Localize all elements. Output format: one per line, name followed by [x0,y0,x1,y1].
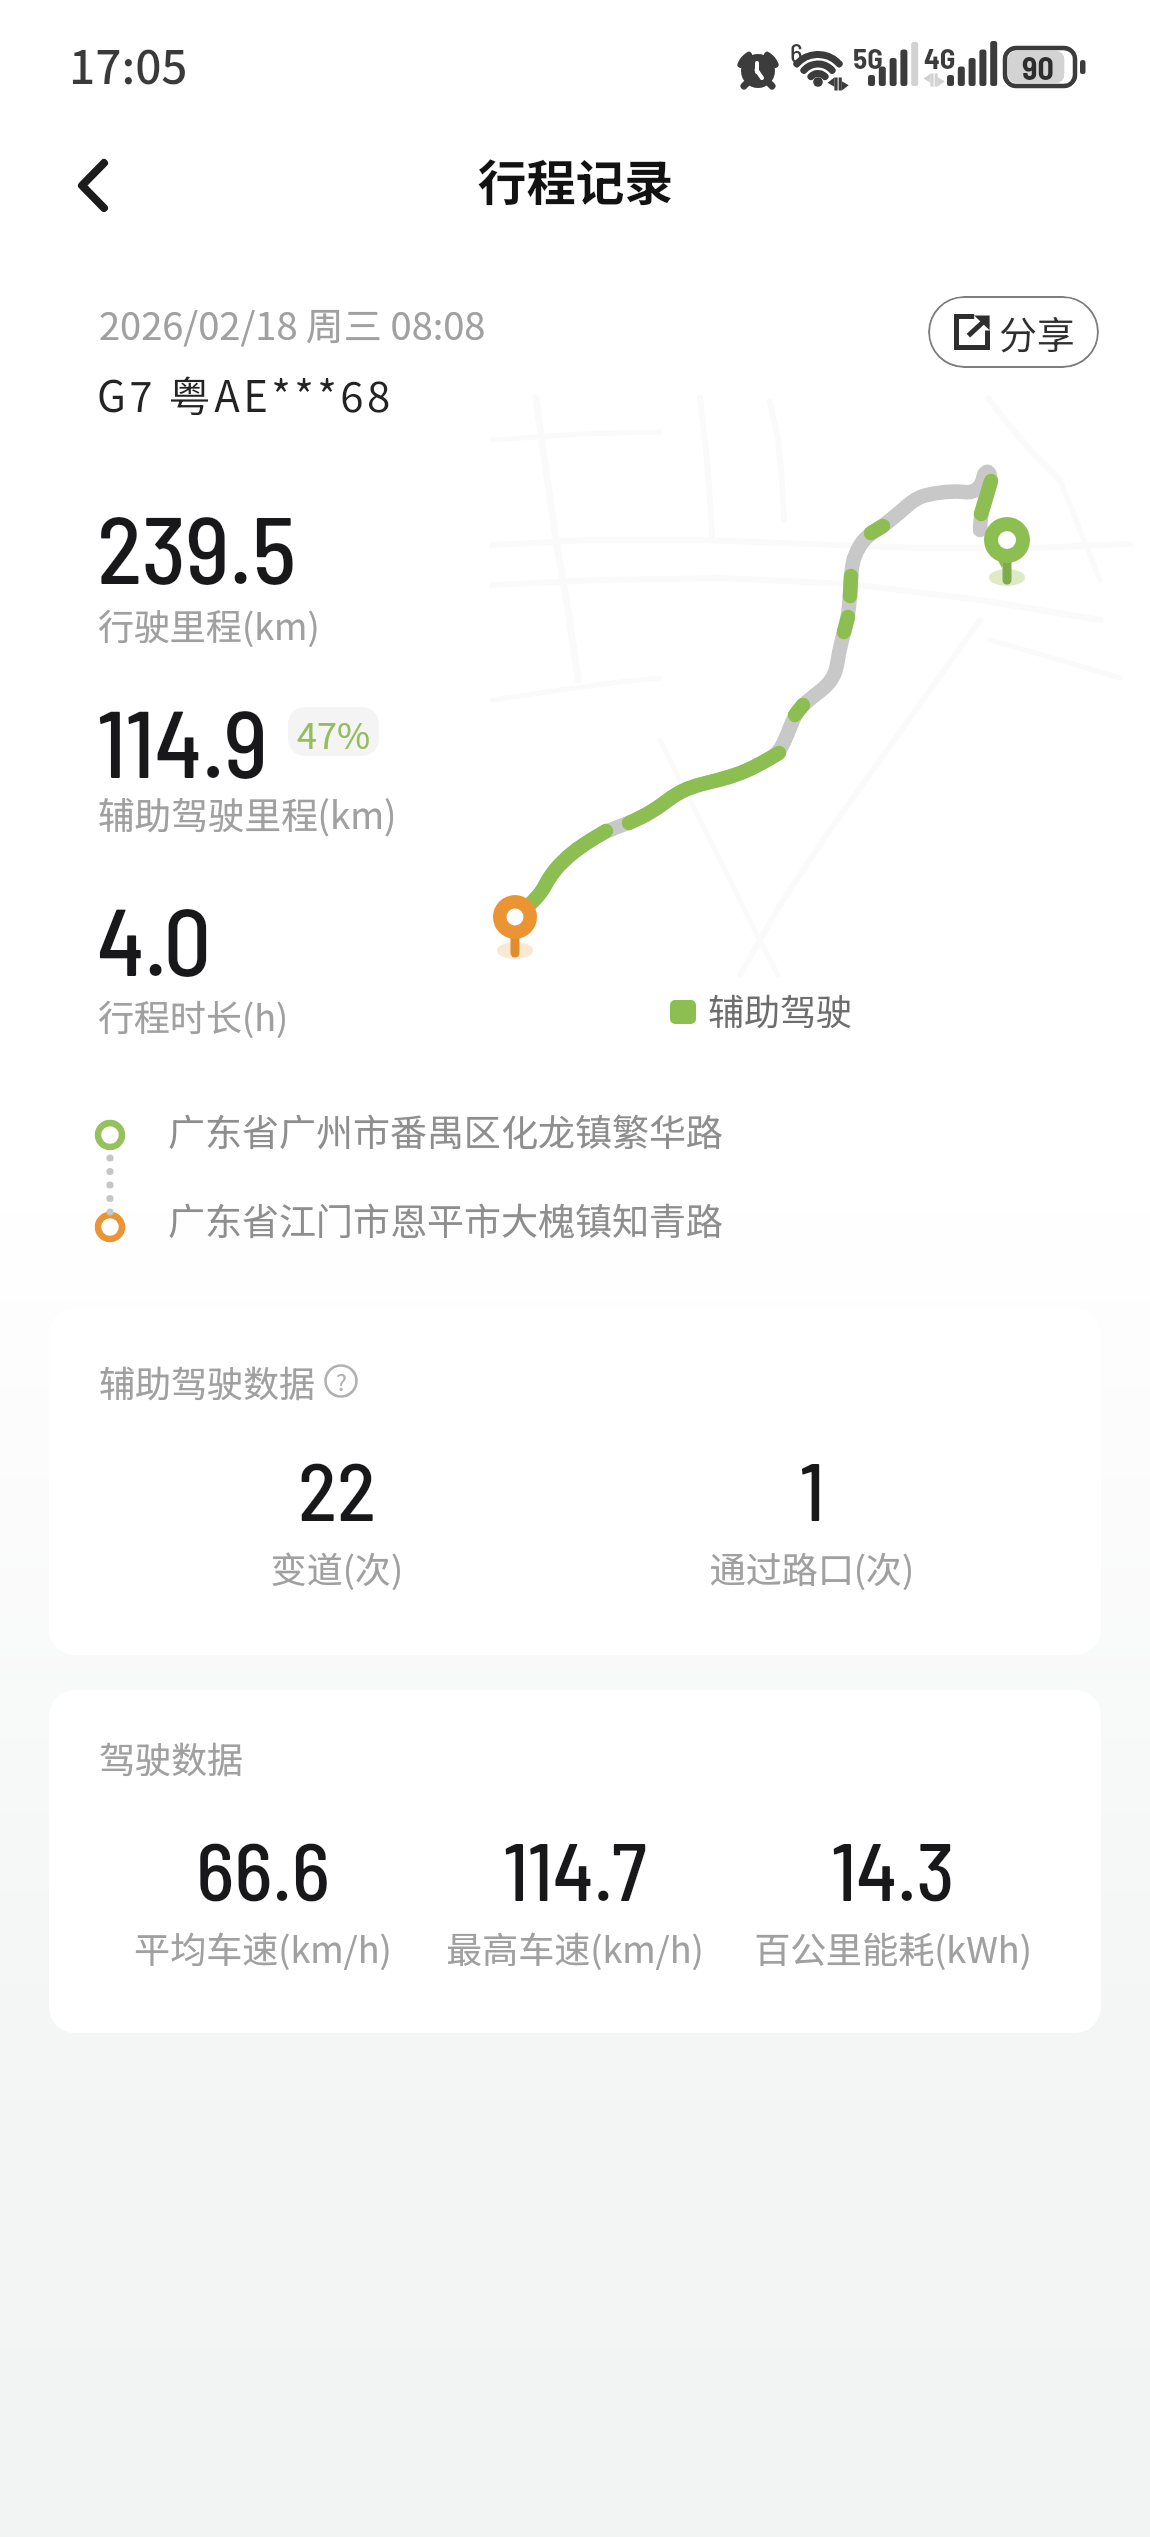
staticText: 114.7 [415,1820,735,1917]
staticText: 行程时长(h) [98,989,289,1041]
staticText: 辅助驾驶数据 [99,1355,316,1407]
staticText: 14.3 [733,1820,1053,1917]
button[interactable]: 广东省广州市番禺区化龙镇繁华路 [168,1103,738,1155]
staticText: 通过路口(次) [652,1541,972,1593]
button[interactable]: 14.3 [733,1820,1053,1973]
staticText: 1 [652,1440,972,1537]
button[interactable]: 帮助说明 [324,1364,358,1398]
button[interactable]: 辅助驾驶数据 [49,1308,1101,1655]
button[interactable]: 66.6 [103,1820,423,1973]
button[interactable]: 驾驶数据 [49,1690,1101,2033]
staticText: 行程记录 [477,144,674,215]
staticText: 变道(次) [177,1541,497,1593]
button[interactable]: 广东省江门市恩平市大槐镇知青路 [168,1192,738,1244]
staticText: 4G [924,40,956,75]
staticText: 分享 [999,305,1076,360]
button[interactable]: 114.7 [415,1820,735,1973]
staticText: 6 [790,36,803,68]
staticText: 47% [297,707,371,756]
staticText: 广东省江门市恩平市大槐镇知青路 [168,1192,723,1244]
staticText: 114.9 [97,684,268,797]
staticText: ? [336,1364,347,1397]
staticText: 90 [1022,48,1054,86]
button[interactable]: 1 [652,1440,972,1593]
staticText: 5G [853,40,883,75]
button[interactable]: Back [45,137,141,233]
staticText: 驾驶数据 [99,1731,244,1783]
staticText: 平均车速(km/h) [103,1921,423,1973]
staticText: 4.0 [97,882,212,995]
staticText: 22 [177,1440,497,1537]
staticText: 17:05 [69,31,188,98]
staticText: 行驶里程(km) [98,598,320,650]
button[interactable]: 22 [177,1440,497,1593]
staticText: 66.6 [103,1820,423,1917]
staticText: G7 粤AE***68 [97,363,394,424]
button[interactable]: 分享 [928,296,1099,368]
staticText: 辅助驾驶里程(km) [98,787,397,840]
staticText: 239.5 [97,490,297,603]
staticText: 2026/02/18 周三 08:08 [99,296,486,351]
staticText: 广东省广州市番禺区化龙镇繁华路 [168,1103,723,1155]
staticText: 辅助驾驶 [708,983,853,1035]
staticText: 最高车速(km/h) [415,1921,735,1973]
staticText: 百公里能耗(kWh) [733,1921,1053,1973]
